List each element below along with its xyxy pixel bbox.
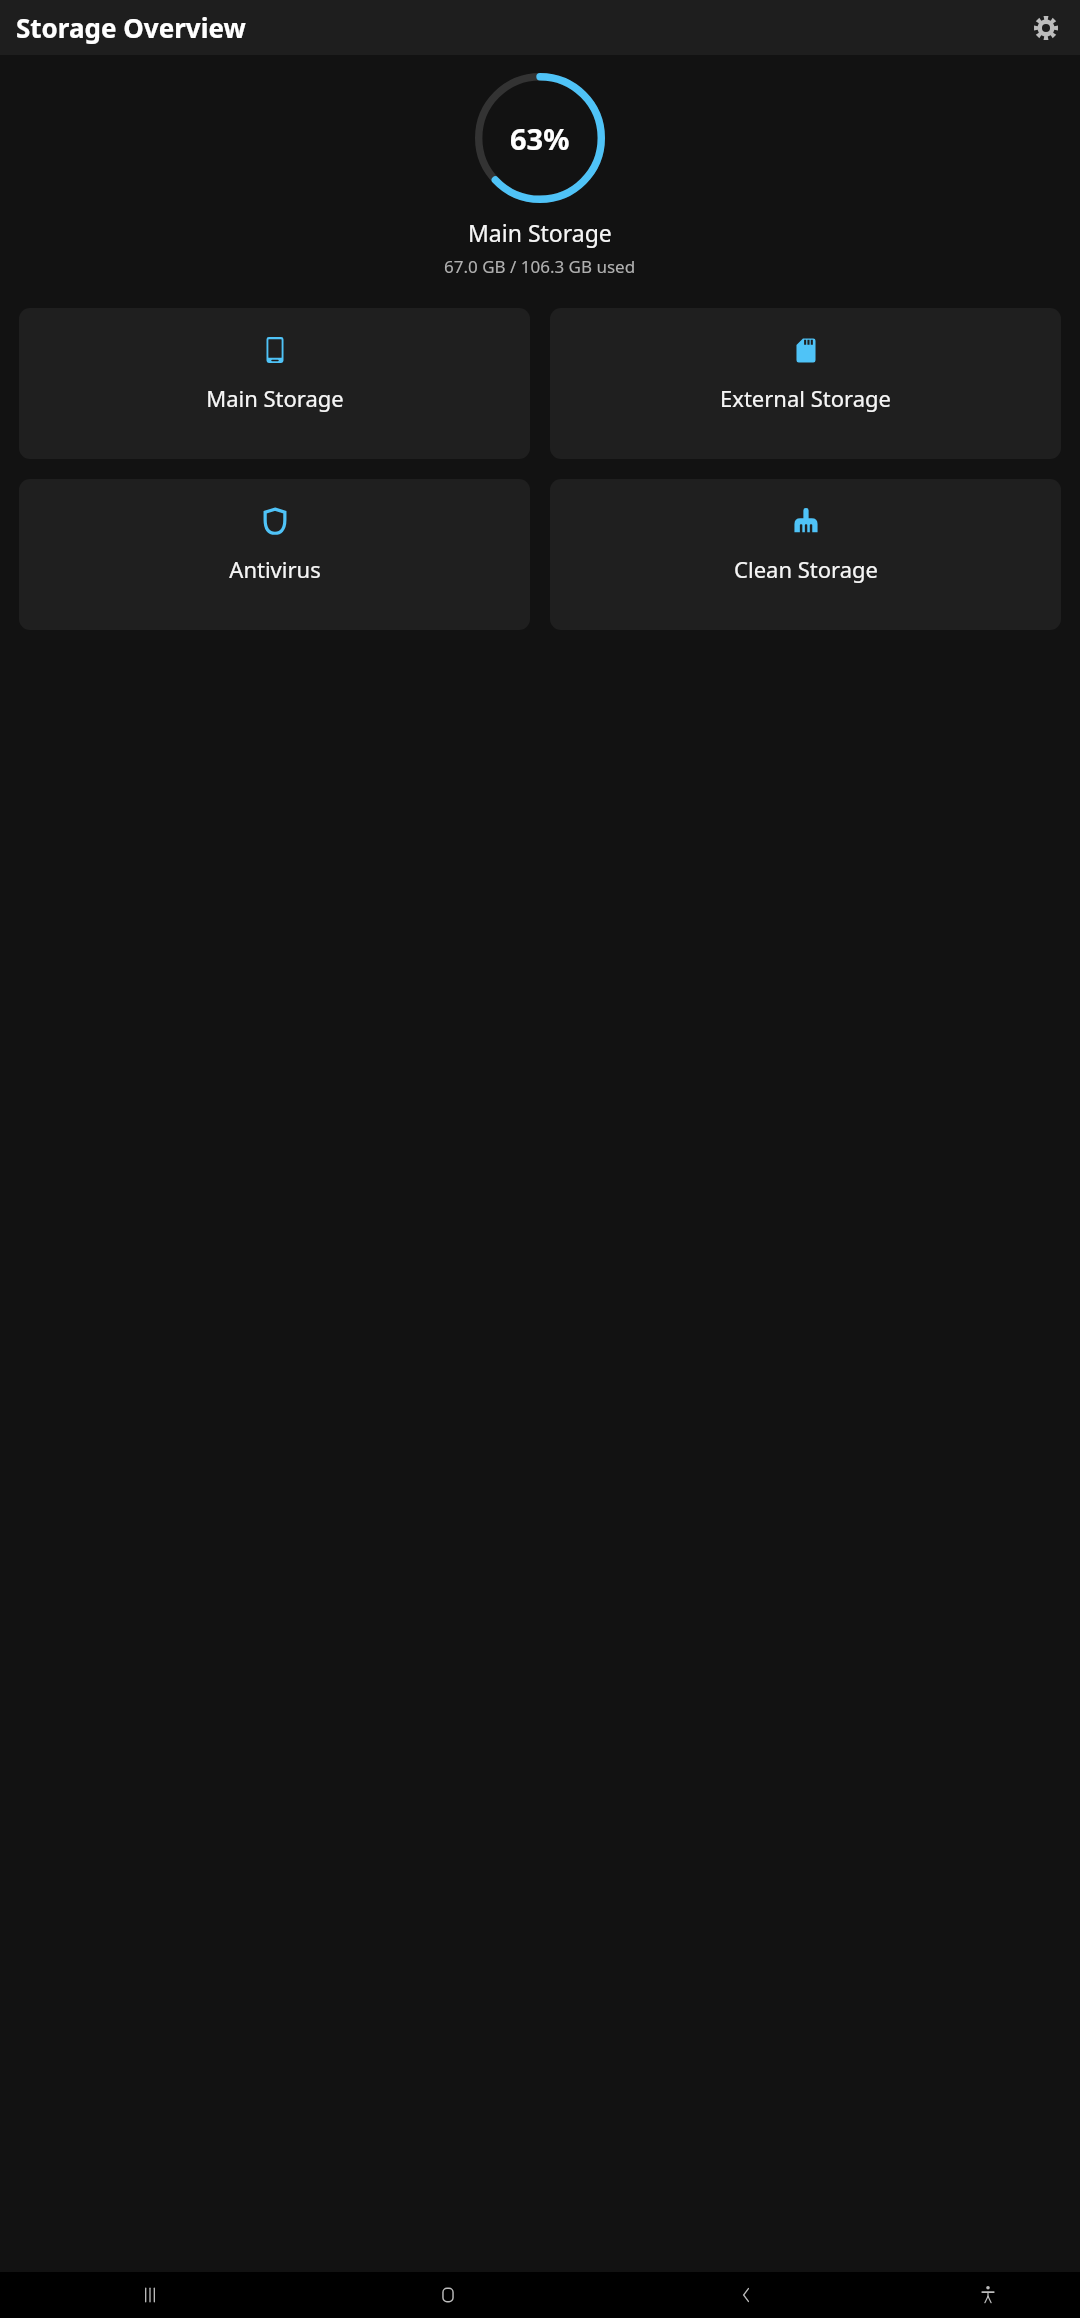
button[interactable]: Accessibility [895, 2272, 1080, 2318]
staticText: External Storage [720, 383, 891, 413]
staticText: Main Storage [468, 217, 612, 248]
staticText: Clean Storage [734, 554, 878, 584]
button[interactable]: Recents [0, 2272, 299, 2318]
button[interactable]: Home [299, 2272, 597, 2318]
button[interactable]: Settings [1026, 8, 1066, 48]
staticText: 63% [510, 119, 570, 158]
staticText: Antivirus [229, 554, 321, 584]
button[interactable]: Clean Storage [550, 479, 1061, 630]
button[interactable]: Back [597, 2272, 895, 2318]
button[interactable]: Main Storage [19, 308, 530, 459]
staticText: Storage Overview [16, 10, 246, 45]
button[interactable]: External Storage [550, 308, 1061, 459]
button[interactable]: Antivirus [19, 479, 530, 630]
staticText: 67.0 GB / 106.3 GB used [444, 255, 636, 278]
staticText: Main Storage [206, 383, 344, 413]
